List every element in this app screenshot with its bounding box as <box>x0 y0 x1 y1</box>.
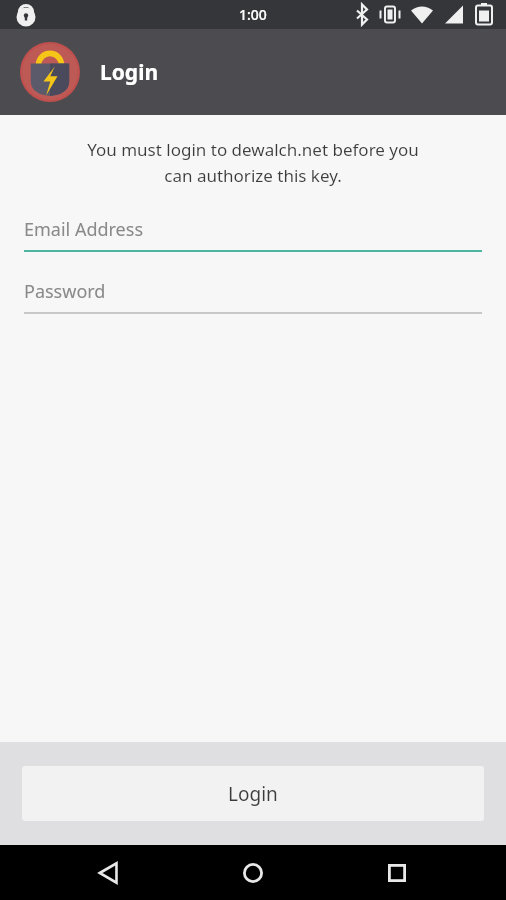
button[interactable]: Back <box>74 845 144 900</box>
staticText: 1:00 <box>239 5 267 24</box>
button[interactable]: Home <box>218 845 288 900</box>
staticText: Login <box>100 58 159 87</box>
staticText: Email Address <box>24 217 144 242</box>
staticText: You must login to dewalch.net before you… <box>24 138 482 187</box>
button[interactable]: Login <box>22 766 484 821</box>
button[interactable]: Recent apps <box>362 845 432 900</box>
button[interactable]: Password <box>24 279 482 314</box>
button[interactable]: Email Address <box>24 217 482 252</box>
staticText: Login <box>228 781 278 807</box>
staticText: Password <box>24 279 106 304</box>
